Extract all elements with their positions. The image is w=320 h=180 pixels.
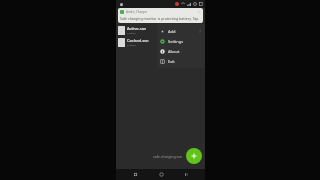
button[interactable]: Add [186,148,202,164]
staticText: Exit [168,59,175,64]
staticText: 0 items [127,31,136,34]
other: More options [198,29,202,33]
button[interactable]: Recent apps [180,169,192,180]
button[interactable]: Andro_Charger [118,8,203,23]
staticText: Settings [168,39,184,44]
staticText: About [168,49,180,54]
staticText: Cached.ssn [127,38,149,43]
staticText: Safe charging monitor is protecting batt… [120,16,201,21]
button[interactable]: Add [157,26,205,36]
staticText: Active.ssn [127,26,147,31]
staticText: Add [168,29,176,34]
button[interactable]: Exit [157,56,205,66]
staticText: safe-charging.ssn [153,154,182,159]
button[interactable]: About [157,46,205,56]
button[interactable]: Cached.ssn [116,36,205,48]
button[interactable]: Active.ssn [116,24,205,36]
staticText: 0 items [127,43,136,46]
button[interactable]: Settings [157,36,205,46]
other: Expand notification [197,10,201,14]
button[interactable]: Back [129,169,141,180]
staticText: Andro_Charger [126,10,148,14]
button[interactable]: Home [155,169,167,180]
